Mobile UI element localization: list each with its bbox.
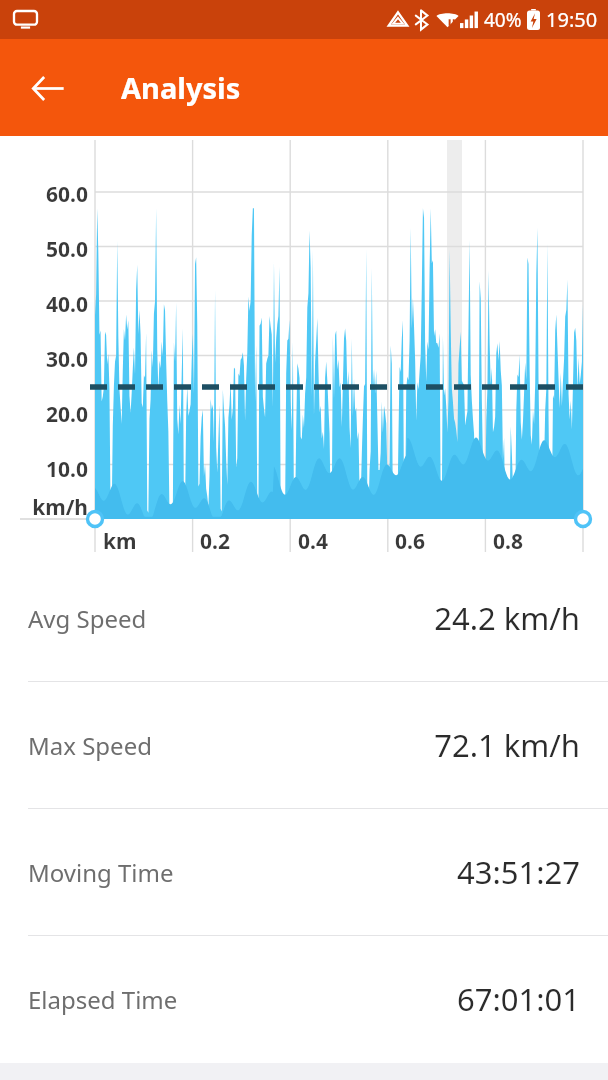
button[interactable]: Max Speed [0,682,608,808]
staticText: 30.0 [18,345,88,374]
staticText: Avg Speed [28,602,147,635]
staticText: 72.1 km/h [434,724,580,766]
staticText: 20.0 [18,400,88,429]
staticText: 60.0 [18,180,88,209]
button[interactable]: Elapsed Time [0,936,608,1062]
staticText: Max Speed [28,729,152,762]
staticText: 40% [484,7,522,33]
staticText: 50.0 [18,235,88,264]
staticText: 10.0 [18,455,88,484]
staticText: 0.8 [493,527,523,556]
staticText: 24.2 km/h [434,597,580,639]
staticText: Moving Time [28,856,174,889]
staticText: 19:50 [546,6,598,33]
staticText: 0.4 [298,527,328,556]
staticText: km/h [18,493,88,522]
staticText: 0.6 [395,527,425,556]
staticText: 67:01:01 [456,978,580,1020]
staticText: 40.0 [18,290,88,319]
staticText: 43:51:27 [456,851,580,893]
staticText: km [103,527,137,556]
button[interactable]: Avg Speed [0,555,608,681]
staticText: 0.2 [200,527,230,556]
button[interactable]: Back [16,56,80,120]
staticText: Elapsed Time [28,983,178,1016]
staticText: Analysis [121,68,241,107]
button[interactable]: Moving Time [0,809,608,935]
